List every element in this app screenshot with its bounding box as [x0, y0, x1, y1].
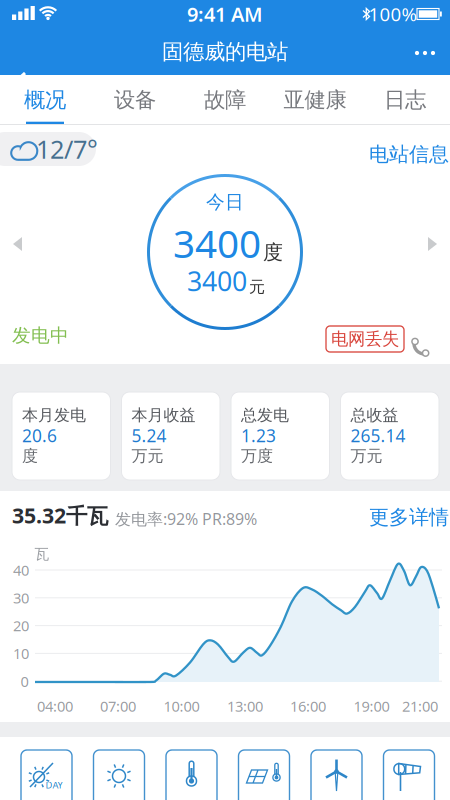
staticText: 04:00 — [37, 696, 73, 716]
staticText: 07:00 — [100, 696, 136, 716]
staticText: 100% — [368, 2, 417, 26]
staticText: 3400 — [187, 263, 247, 299]
staticText: 16:00 — [290, 696, 326, 716]
staticText: 40 — [13, 560, 29, 580]
staticText: 12/7° — [36, 132, 98, 166]
staticText: 30 — [13, 588, 29, 608]
staticText: 10:00 — [163, 696, 199, 716]
staticText: 总发电 — [241, 405, 289, 425]
button[interactable]: 总收益 — [340, 392, 439, 480]
button[interactable]: 概况 — [0, 75, 90, 125]
button[interactable] — [416, 228, 450, 260]
staticText: 度 — [263, 240, 283, 265]
staticText: 故障 — [204, 87, 246, 113]
staticText: 总收益 — [350, 405, 398, 425]
button[interactable] — [166, 750, 217, 800]
staticText: 设备 — [114, 87, 156, 113]
staticText: 19:00 — [353, 696, 389, 716]
staticText: 元 — [249, 277, 265, 297]
staticText: 更多详情 — [369, 505, 449, 530]
button[interactable]: 更多详情 — [369, 505, 449, 530]
staticText: 电站信息 — [369, 142, 449, 167]
staticText: 今日 — [206, 190, 244, 213]
staticText: 1.23 — [241, 424, 276, 447]
button[interactable] — [413, 331, 443, 361]
staticText: 13:00 — [227, 696, 263, 716]
staticText: 发电中 — [12, 324, 69, 347]
staticText: 5.24 — [131, 424, 166, 447]
staticText: 0 — [20, 671, 28, 691]
staticText: 265.14 — [350, 424, 405, 447]
staticText: 万元 — [131, 446, 163, 466]
button[interactable]: 电网丢失 — [326, 326, 404, 352]
button[interactable]: 日志 — [360, 75, 450, 125]
staticText: 电网丢失 — [331, 328, 399, 350]
staticText: 10 — [13, 644, 29, 663]
button[interactable]: 电站信息 — [369, 142, 449, 167]
button[interactable] — [238, 750, 289, 800]
staticText: 20.6 — [22, 424, 57, 447]
button[interactable]: 本月收益 — [121, 392, 220, 480]
button[interactable] — [0, 31, 40, 75]
staticText: DAY — [45, 779, 62, 791]
staticText: 本月发电 — [22, 405, 86, 425]
button[interactable]: DAY — [21, 750, 72, 800]
staticText: 21:00 — [402, 696, 438, 716]
button[interactable] — [408, 31, 442, 75]
staticText: 万元 — [350, 446, 382, 466]
staticText: 万度 — [241, 446, 273, 466]
button[interactable] — [383, 750, 434, 800]
staticText: 35.32千瓦 — [12, 501, 108, 529]
button[interactable] — [0, 228, 34, 260]
button[interactable]: 亚健康 — [270, 75, 360, 125]
button[interactable]: 12/7° — [0, 132, 96, 166]
staticText: 固德威的电站 — [162, 39, 288, 65]
staticText: 发电率:92% PR:89% — [115, 508, 257, 529]
staticText: 本月收益 — [131, 405, 195, 425]
staticText: 日志 — [384, 87, 426, 113]
button[interactable]: 设备 — [90, 75, 180, 125]
staticText: 3400 — [173, 217, 261, 269]
staticText: 20 — [13, 616, 29, 635]
staticText: 9:41 AM — [187, 1, 263, 27]
button[interactable]: 总发电 — [231, 392, 329, 480]
button[interactable]: 故障 — [180, 75, 270, 125]
staticText: 概况 — [24, 87, 66, 113]
button[interactable] — [93, 750, 144, 800]
staticText: 度 — [22, 446, 38, 466]
button[interactable]: 本月发电 — [12, 392, 110, 480]
staticText: 亚健康 — [283, 87, 346, 113]
button[interactable] — [311, 750, 362, 800]
staticText: 瓦 — [34, 545, 49, 563]
